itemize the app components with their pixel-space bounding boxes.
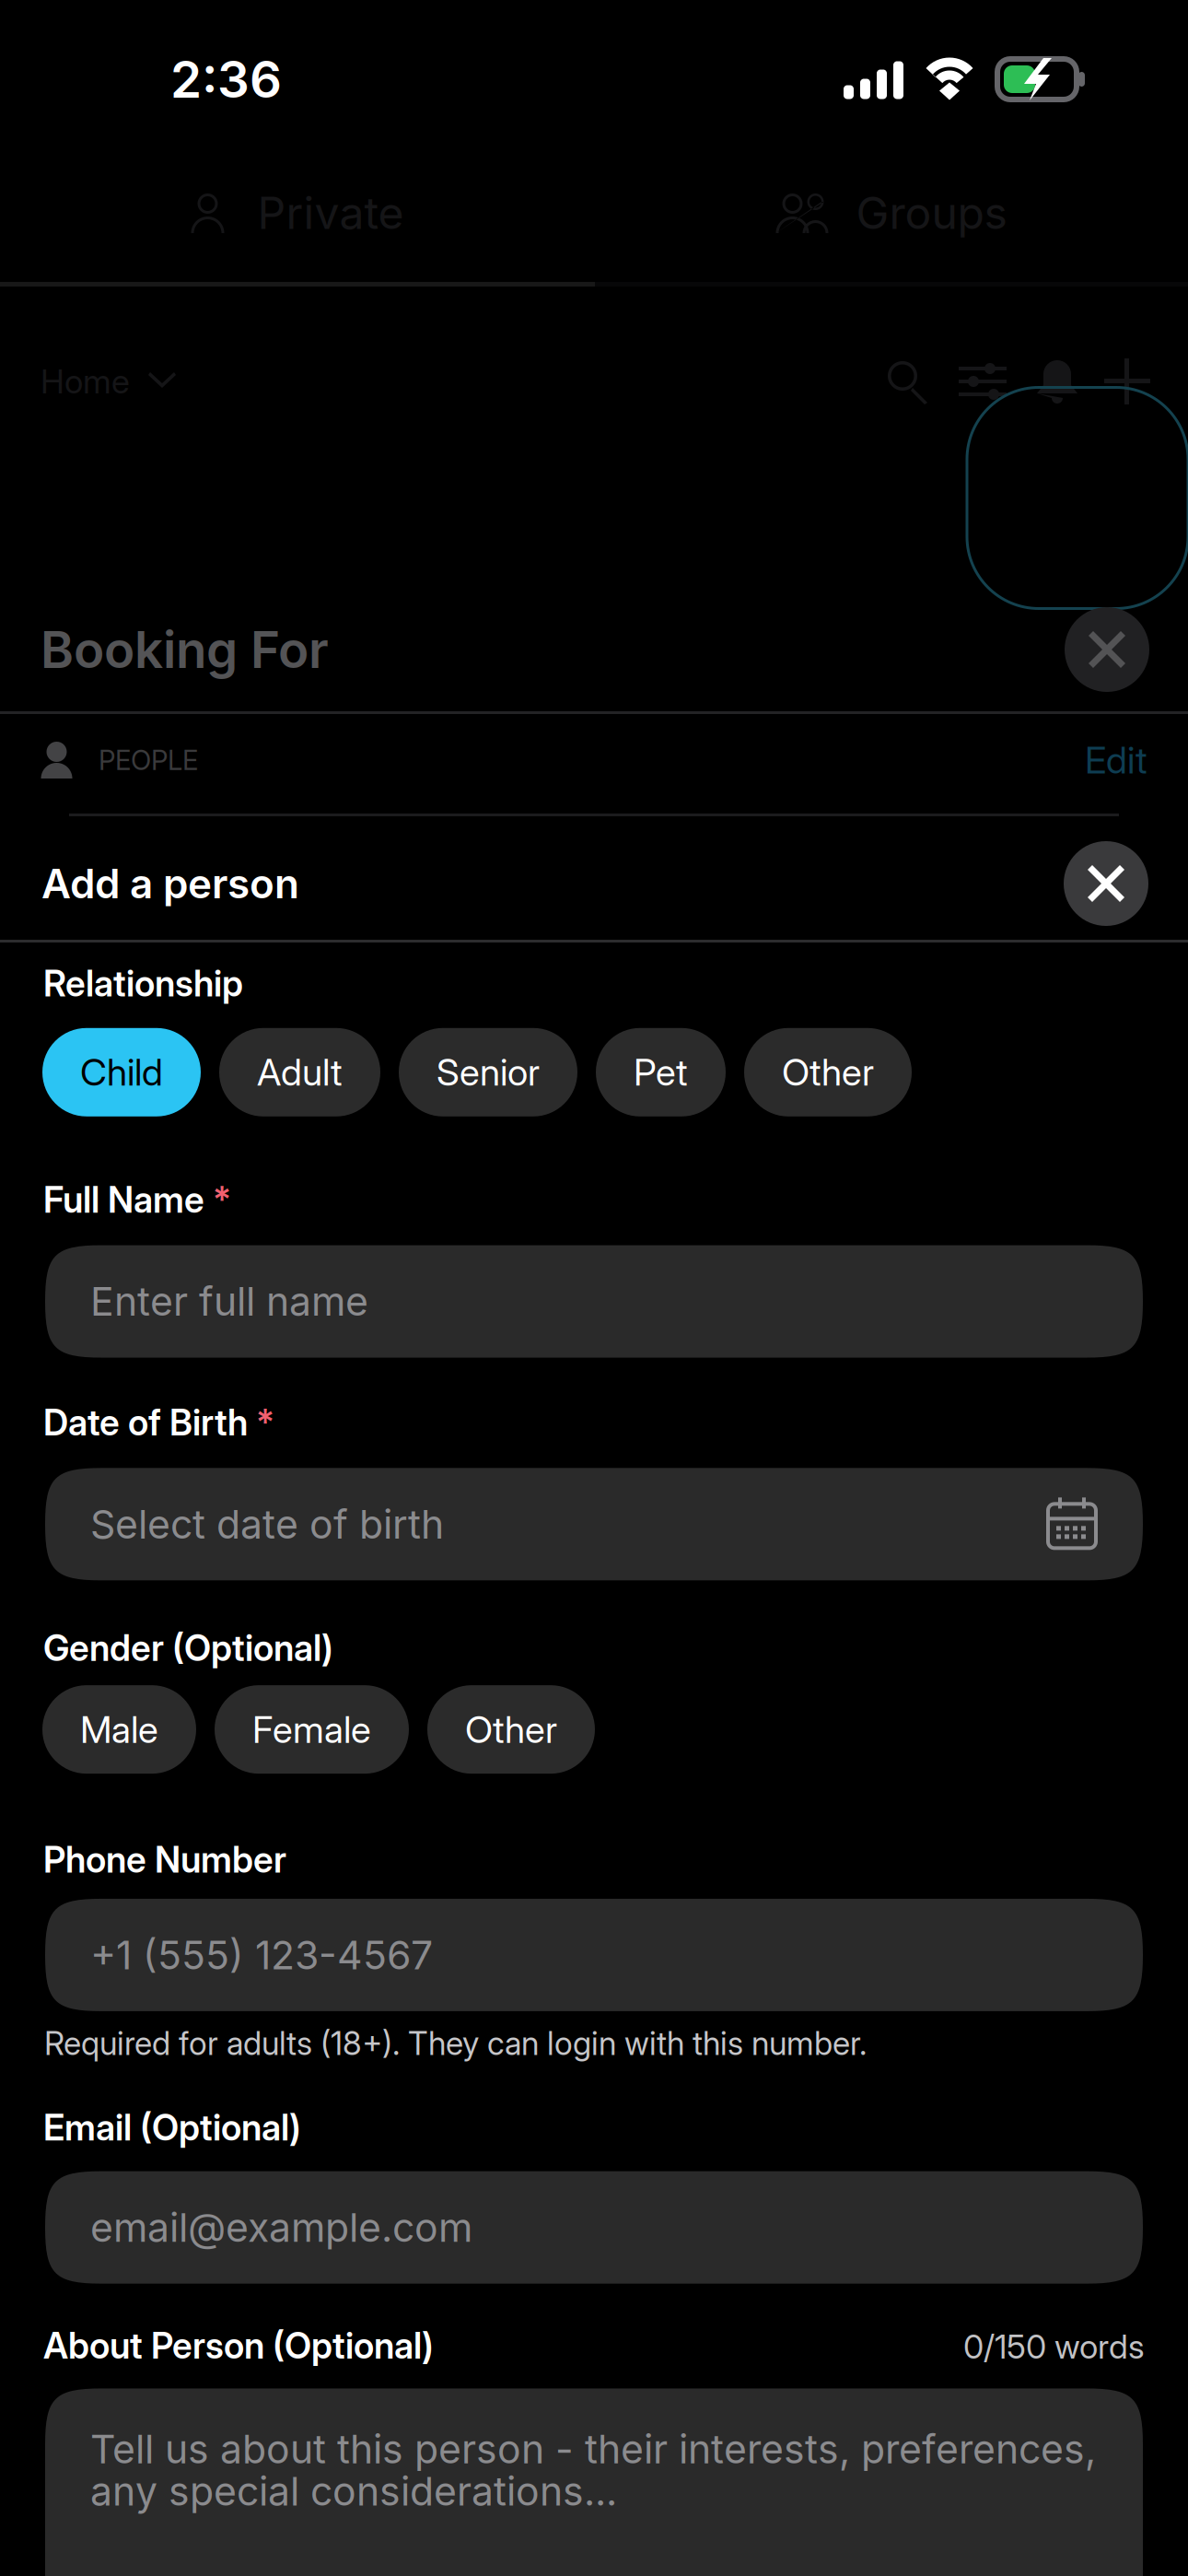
button[interactable]: Close <box>1064 841 1148 926</box>
staticText: Booking For <box>41 619 329 680</box>
staticText: Select date of birth <box>90 1500 444 1548</box>
button[interactable]: Filter <box>960 359 1006 404</box>
button[interactable]: Notifications <box>1035 357 1079 405</box>
staticText: Private <box>257 186 404 240</box>
staticText: Full Name <box>43 1178 204 1221</box>
staticText: Required for adults (18+). They can logi… <box>44 2024 867 2063</box>
staticText: Child <box>80 1050 163 1095</box>
button[interactable]: Senior <box>399 1028 577 1116</box>
staticText: * <box>248 1401 274 1444</box>
staticText: 2:36 <box>170 49 282 110</box>
button[interactable]: Enter full name <box>45 1245 1143 1358</box>
button[interactable]: +1 (555) 123-4567 <box>45 1899 1143 2011</box>
staticText: Home <box>41 361 130 402</box>
staticText: +1 (555) 123-4567 <box>90 1931 433 1979</box>
staticText: Female <box>252 1707 371 1752</box>
button[interactable]: Child <box>42 1028 201 1116</box>
staticText: Relationship <box>43 962 243 1005</box>
staticText: Senior <box>437 1050 540 1095</box>
button[interactable]: Close <box>1065 607 1149 692</box>
button[interactable]: Female <box>215 1685 409 1774</box>
button[interactable]: Edit <box>1085 738 1147 782</box>
staticText: Other <box>782 1050 874 1095</box>
staticText: * <box>204 1178 231 1221</box>
staticText: Enter full name <box>90 1278 368 1325</box>
button[interactable]: Other <box>427 1685 595 1774</box>
staticText: 0/150 words <box>963 2327 1145 2367</box>
button[interactable]: Private <box>0 159 594 266</box>
button[interactable]: email@example.com <box>45 2171 1143 2284</box>
staticText: Gender (Optional) <box>43 1626 333 1670</box>
staticText: any special considerations... <box>90 2467 617 2515</box>
staticText: PEOPLE <box>99 744 198 776</box>
staticText: email@example.com <box>90 2204 472 2251</box>
button[interactable]: Add <box>1105 359 1149 404</box>
staticText: Tell us about this person - their intere… <box>90 2425 1096 2473</box>
staticText: About Person (Optional) <box>43 2324 434 2367</box>
button[interactable]: Select date of birth <box>45 1468 1143 1580</box>
staticText: Add a person <box>41 859 299 908</box>
staticText: Male <box>80 1707 158 1752</box>
staticText: Edit <box>1085 738 1147 782</box>
button[interactable]: Home <box>41 361 176 402</box>
staticText: Other <box>465 1707 557 1752</box>
button[interactable]: Adult <box>219 1028 380 1116</box>
staticText: Adult <box>257 1050 343 1095</box>
button[interactable]: Groups <box>594 159 1188 266</box>
button[interactable]: Search <box>886 359 930 404</box>
staticText: Groups <box>856 186 1007 240</box>
button[interactable]: Male <box>42 1685 196 1774</box>
button[interactable]: Pet <box>596 1028 726 1116</box>
staticText: Pet <box>634 1050 688 1095</box>
staticText: Phone Number <box>43 1838 286 1881</box>
staticText: Date of Birth <box>43 1401 248 1444</box>
button[interactable]: Other <box>744 1028 912 1116</box>
staticText: Email (Optional) <box>43 2106 301 2149</box>
